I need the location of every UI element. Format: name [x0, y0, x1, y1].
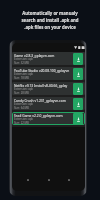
button[interactable]: Home: [44, 175, 54, 185]
staticText: Extension: apk: [14, 57, 34, 61]
button[interactable]: Candy Crush v1.231_gplayvn.com: [12, 97, 85, 110]
staticText: Size: 32 MB: [14, 61, 29, 65]
staticText: Game v2.8.3_gplayvn.com: [14, 53, 55, 57]
button[interactable]: Back: [23, 175, 33, 185]
staticText: Size: 28 MB: [14, 91, 29, 95]
button[interactable]: Install: [73, 68, 83, 80]
button[interactable]: Install: [73, 53, 83, 65]
staticText: Extension: apk: [14, 87, 34, 91]
staticText: Extension: apk: [14, 102, 34, 106]
staticText: YouTube Studio v20.08.100_gplayvn: [14, 68, 70, 72]
staticText: Netflix v9.13 Install v8.40.66_gplay: [14, 83, 68, 87]
staticText: Size: 18 MB: [14, 76, 29, 80]
staticText: search and install .apk and: [21, 17, 79, 23]
button[interactable]: Install: [73, 83, 83, 95]
staticText: .apk files on your device: [24, 24, 76, 30]
button[interactable]: YouTube Studio v20.08.100_gplayvn: [12, 67, 85, 80]
button[interactable]: Install: [73, 113, 83, 125]
staticText: Size: 64 MB: [14, 106, 29, 110]
button[interactable]: Snail Game v2.2.0_gplayvn.com: [12, 112, 85, 125]
button[interactable]: Netflix v9.13 Install v8.40.66_gplay: [12, 82, 85, 95]
staticText: Size: 22 MB: [14, 121, 29, 125]
staticText: Automatically or manualy: [22, 10, 78, 16]
staticText: Snail Game v2.2.0_gplayvn.com: [14, 113, 63, 117]
button[interactable]: Game v2.8.3_gplayvn.com: [12, 52, 85, 65]
staticText: Extension: apk: [14, 72, 34, 76]
button[interactable]: Install: [73, 98, 83, 110]
button[interactable]: Recents: [64, 175, 74, 185]
staticText: Extension: apk: [14, 117, 34, 121]
staticText: Candy Crush v1.231_gplayvn.com: [14, 98, 66, 102]
